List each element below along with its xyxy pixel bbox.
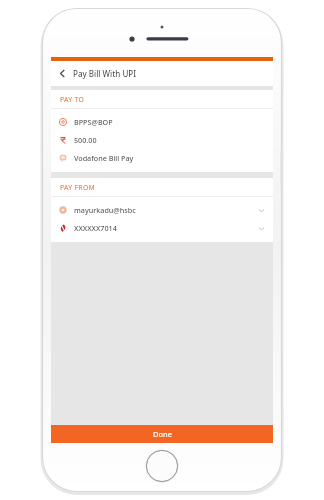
staticText: 500.00 — [74, 135, 97, 145]
staticText: mayurkadu@hsbc — [74, 205, 258, 215]
staticText: PAY TO — [60, 95, 85, 104]
staticText: Vodafone Bill Pay — [74, 153, 134, 163]
button[interactable]: Vodafone Bill Pay — [51, 149, 273, 167]
staticText: XXXXXX7014 — [74, 223, 258, 233]
staticText: PAY FROM — [60, 183, 95, 192]
button[interactable]: mayurkadu@hsbc — [51, 201, 273, 219]
button[interactable]: 500.00 — [51, 131, 273, 149]
staticText: Done — [153, 429, 172, 439]
button[interactable]: Back — [51, 61, 73, 86]
button[interactable]: XXXXXX7014 — [51, 219, 273, 237]
staticText: Pay Bill With UPI — [73, 68, 137, 79]
button[interactable]: BPPS@BOP — [51, 113, 273, 131]
staticText: BPPS@BOP — [74, 117, 113, 127]
button[interactable]: Done — [51, 425, 273, 443]
